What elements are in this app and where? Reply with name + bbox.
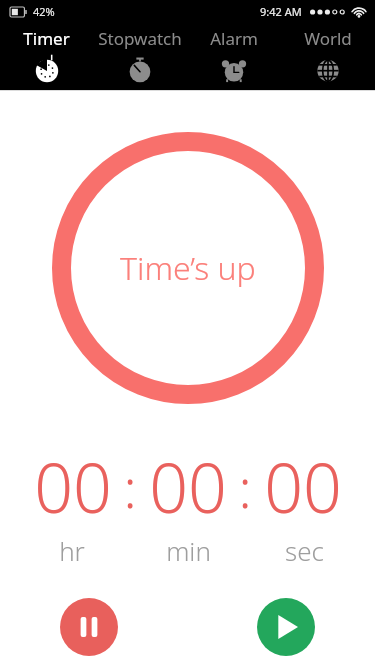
staticText: min [166,533,211,568]
button[interactable]: Timer [0,22,93,83]
staticText: Time’s up [120,246,256,290]
button[interactable]: Time’s up [52,132,324,404]
button[interactable]: Start [257,598,315,656]
button[interactable]: Pause [60,598,118,656]
staticText: 42% [33,4,55,19]
staticText: 00 [34,440,112,533]
staticText: Stopwatch [98,27,182,50]
staticText: 00 [149,440,227,533]
staticText: 9:42 AM [260,4,302,19]
staticText: Timer [23,27,70,50]
staticText: 00 [264,440,342,533]
button[interactable]: Stopwatch [93,22,187,83]
staticText: : [123,450,137,524]
button[interactable]: Alarm [187,22,281,83]
staticText: sec [285,533,324,568]
staticText: hr [59,533,85,568]
button[interactable]: World [281,22,375,83]
staticText: World [304,27,352,50]
staticText: : [238,450,252,524]
staticText: Alarm [210,27,258,50]
